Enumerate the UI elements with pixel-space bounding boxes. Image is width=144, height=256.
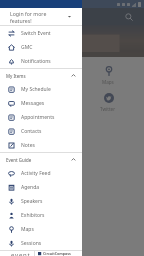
button[interactable]: Exhibitors [0,208,82,222]
staticText: Notifications [21,58,51,65]
staticText: Twitter [100,106,116,112]
staticText: Agenda [21,184,40,191]
staticText: CircuitCompass [43,251,71,256]
button[interactable]: Exhibitors [0,63,72,86]
staticText: Sessions [21,240,42,247]
staticText: Maps [21,226,34,233]
staticText: Messages [21,100,45,107]
button[interactable]: Login for more features! [0,8,82,25]
staticText: Login for more features! [10,10,67,24]
staticText: Activity Feed [21,170,51,177]
staticText: Switch Event [21,30,51,37]
button[interactable]: GMC [0,40,82,54]
staticText: event [11,251,31,256]
staticText: f [36,93,39,103]
button[interactable]: My Schedule [0,82,82,96]
button[interactable]: Sessions [0,236,82,250]
button[interactable]: Agenda [0,180,82,194]
button[interactable]: Notifications [0,54,82,68]
staticText: Notes [21,142,35,149]
staticText: Exhibitors [21,212,45,219]
button[interactable]: f [0,90,72,113]
staticText: My Items [6,73,26,79]
staticText: Maps [102,79,114,85]
button[interactable]: Maps [0,222,82,236]
button[interactable]: Contacts [0,124,82,138]
staticText: Event Guide [6,157,32,163]
staticText: Appointments [21,114,55,121]
button[interactable]: Speakers [0,194,82,208]
button[interactable]: Twitter [72,90,144,113]
staticText: GMC [21,44,33,51]
button[interactable]: Appointments [0,110,82,124]
button[interactable]: Switch Event [0,26,82,40]
staticText: My Schedule [21,86,51,93]
button[interactable]: Maps [72,63,144,86]
button[interactable]: Activity Feed [0,166,82,180]
staticText: Speakers [21,198,43,205]
button[interactable]: Search [122,10,136,24]
staticText: Contacts [21,128,42,135]
button[interactable]: Notes [0,138,82,152]
button[interactable]: Messages [0,96,82,110]
